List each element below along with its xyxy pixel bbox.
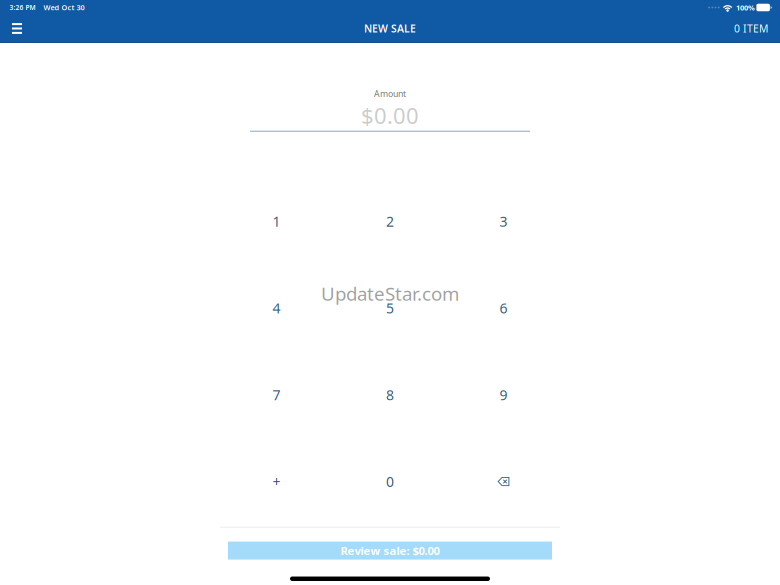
- button[interactable]: 3: [447, 178, 560, 265]
- staticText: 4: [272, 299, 280, 318]
- button[interactable]: 0: [333, 438, 447, 525]
- staticText: NEW SALE: [364, 21, 416, 36]
- staticText: 3: [499, 212, 507, 231]
- button[interactable]: Review sale: $0.00: [228, 542, 552, 560]
- staticText: 100%: [736, 2, 755, 13]
- staticText: 0 ITEM: [734, 21, 768, 36]
- staticText: 0: [386, 472, 394, 491]
- staticText: +: [272, 472, 280, 491]
- staticText: 2: [386, 212, 394, 231]
- staticText: 3:26 PM: [9, 3, 35, 12]
- staticText: UpdateStar.com: [321, 281, 459, 306]
- staticText: 8: [386, 385, 394, 404]
- staticText: 1: [272, 212, 280, 231]
- staticText: Amount: [374, 88, 406, 100]
- button[interactable]: 4: [220, 265, 333, 351]
- button[interactable]: +: [220, 438, 333, 525]
- button[interactable]: 7: [220, 351, 333, 438]
- button[interactable]: Menu: [0, 14, 34, 42]
- button[interactable]: 6: [447, 265, 560, 351]
- button[interactable]: Delete: [447, 438, 560, 525]
- button[interactable]: 5: [333, 265, 447, 351]
- button[interactable]: 1: [220, 178, 333, 265]
- staticText: 9: [499, 385, 507, 404]
- staticText: Wed Oct 30: [43, 2, 84, 12]
- staticText: 6: [499, 299, 507, 318]
- button[interactable]: 8: [333, 351, 447, 438]
- staticText: 5: [386, 299, 394, 318]
- staticText: Review sale: $0.00: [340, 543, 439, 558]
- button[interactable]: 0 ITEM: [728, 14, 774, 42]
- staticText: $0.00: [361, 100, 419, 130]
- button[interactable]: 9: [447, 351, 560, 438]
- button[interactable]: 2: [333, 178, 447, 265]
- staticText: 7: [272, 385, 280, 404]
